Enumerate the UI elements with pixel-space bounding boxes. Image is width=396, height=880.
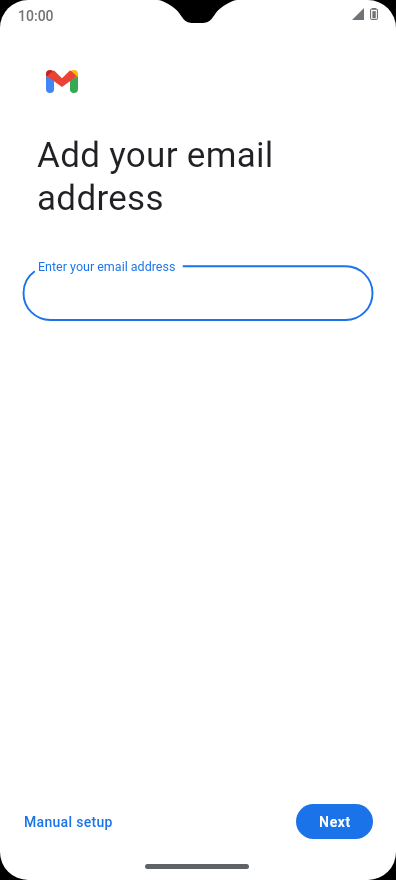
staticText: Manual setup [24, 814, 113, 830]
button[interactable]: Manual setup [16, 808, 121, 836]
staticText: Next [319, 814, 351, 830]
staticText: Add your email address [37, 135, 274, 219]
button[interactable]: Next [296, 804, 373, 839]
staticText: 10:00 [18, 8, 54, 24]
other: Gmail [46, 70, 78, 93]
other: Mobile signal [352, 8, 364, 20]
button[interactable] [23, 266, 373, 320]
other: Battery [370, 8, 378, 20]
staticText: Enter your email address [38, 259, 176, 274]
